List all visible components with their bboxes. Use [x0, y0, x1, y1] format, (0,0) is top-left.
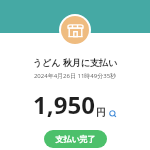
staticText: 円	[96, 106, 106, 119]
staticText: 1,950	[33, 88, 95, 121]
button[interactable]: 明細を見る	[109, 110, 117, 118]
staticText: 2024年4月26日 11時49分35秒	[0, 72, 150, 80]
button[interactable]: 支払い完了	[44, 130, 107, 148]
staticText: うどん 秋月に支払い	[0, 56, 150, 68]
staticText: 支払い完了	[55, 134, 96, 144]
